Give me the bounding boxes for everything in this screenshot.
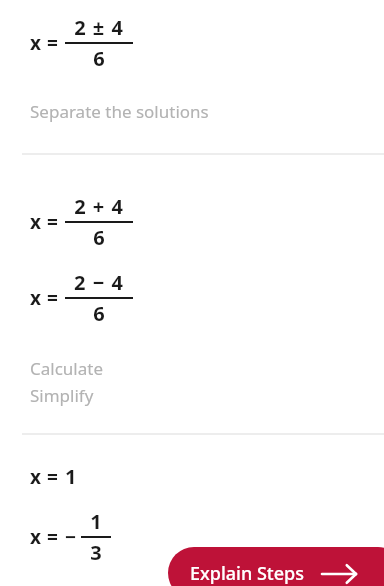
staticText: 2 ± 4 <box>74 14 124 41</box>
staticText: Separate the solutions <box>30 100 209 123</box>
staticText: Simplify <box>30 384 94 407</box>
staticText: 6 <box>93 45 105 72</box>
staticText: x = <box>30 285 59 311</box>
staticText: 2 + 4 <box>74 193 124 220</box>
staticText: x = <box>30 524 59 550</box>
staticText: Explain Steps <box>190 561 304 586</box>
staticText: 3 <box>90 539 102 566</box>
staticText: x = <box>30 30 59 56</box>
staticText: − <box>65 524 77 550</box>
other: Explain Steps <box>322 563 356 585</box>
staticText: x = <box>30 464 59 490</box>
staticText: 6 <box>93 300 105 327</box>
staticText: 1 <box>65 463 77 490</box>
button[interactable]: Explain Steps <box>168 547 384 586</box>
staticText: 1 <box>90 508 103 535</box>
staticText: 2 − 4 <box>74 269 124 296</box>
staticText: Calculate <box>30 357 103 380</box>
staticText: x = <box>30 209 59 235</box>
staticText: 6 <box>93 224 105 251</box>
